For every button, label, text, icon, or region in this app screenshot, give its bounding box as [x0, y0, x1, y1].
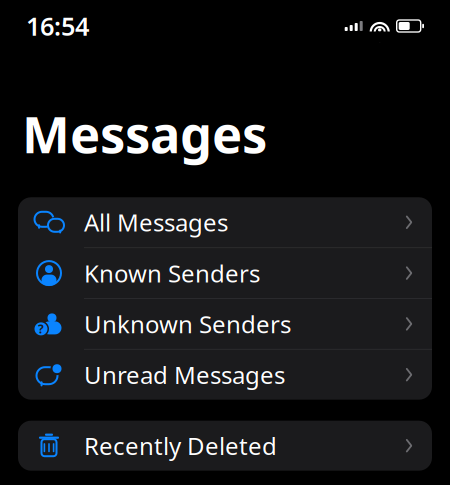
- button[interactable]: Unread Messages: [18, 350, 432, 400]
- button[interactable]: ?: [18, 299, 432, 350]
- staticText: 16:54: [26, 9, 89, 43]
- button[interactable]: Known Senders: [18, 248, 432, 299]
- staticText: Recently Deleted: [84, 430, 277, 462]
- staticText: Unread Messages: [84, 359, 285, 391]
- staticText: Known Senders: [84, 257, 260, 289]
- button[interactable]: All Messages: [18, 197, 432, 248]
- staticText: Unknown Senders: [84, 308, 291, 340]
- staticText: ?: [38, 321, 44, 337]
- button[interactable]: Recently Deleted: [18, 421, 432, 471]
- staticText: All Messages: [84, 206, 228, 238]
- staticText: Messages: [22, 100, 267, 167]
